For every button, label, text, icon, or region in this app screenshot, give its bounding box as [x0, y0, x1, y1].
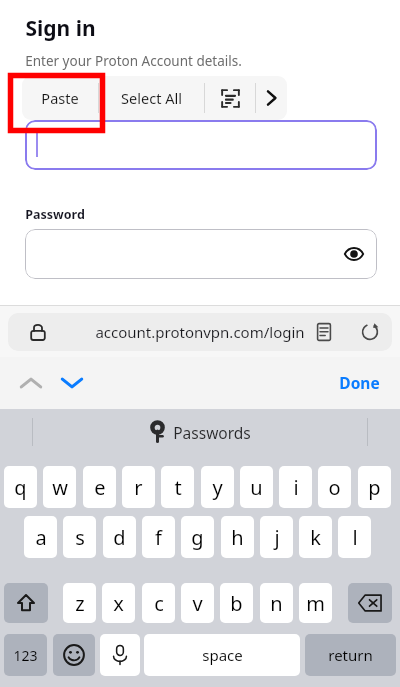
- staticText: j: [274, 524, 280, 551]
- button[interactable]: q: [4, 466, 37, 508]
- button[interactable]: x: [102, 583, 135, 623]
- staticText: space: [202, 645, 243, 665]
- staticText: r: [134, 474, 143, 501]
- button[interactable]: h: [221, 516, 254, 558]
- button[interactable]: Previous field: [14, 371, 48, 395]
- button[interactable]: space: [144, 634, 300, 676]
- staticText: f: [155, 524, 162, 551]
- staticText: v: [192, 590, 203, 617]
- staticText: i: [293, 474, 299, 501]
- other: Secure connection: [28, 322, 48, 342]
- button[interactable]: Scan text: [205, 76, 255, 120]
- button[interactable]: [25, 120, 377, 170]
- button[interactable]: Done: [330, 367, 388, 397]
- staticText: return: [328, 645, 373, 665]
- button[interactable]: 123: [4, 634, 47, 676]
- button[interactable]: Shift: [4, 583, 48, 623]
- button[interactable]: k: [299, 516, 332, 558]
- staticText: s: [75, 524, 85, 551]
- staticText: m: [306, 590, 325, 617]
- staticText: b: [230, 590, 243, 617]
- button[interactable]: f: [142, 516, 175, 558]
- staticText: Select All: [121, 88, 182, 108]
- button[interactable]: g: [181, 516, 214, 558]
- staticText: h: [231, 524, 244, 551]
- button[interactable]: z: [63, 583, 96, 623]
- staticText: Password: [25, 206, 85, 223]
- staticText: Passwords: [173, 422, 251, 443]
- button[interactable]: Dictation: [100, 634, 140, 676]
- button[interactable]: i: [279, 466, 312, 508]
- staticText: n: [270, 590, 283, 617]
- button[interactable]: v: [181, 583, 214, 623]
- staticText: e: [94, 474, 106, 501]
- button[interactable]: Reload: [360, 322, 380, 342]
- button[interactable]: Show password: [340, 240, 368, 268]
- staticText: a: [35, 524, 47, 551]
- button[interactable]: Secure connection: [8, 313, 392, 351]
- button[interactable]: r: [122, 466, 155, 508]
- staticText: w: [52, 474, 68, 501]
- staticText: p: [368, 474, 381, 501]
- button[interactable]: n: [260, 583, 293, 623]
- button[interactable]: m: [299, 583, 332, 623]
- button[interactable]: j: [260, 516, 293, 558]
- button[interactable]: d: [103, 516, 136, 558]
- staticText: y: [212, 474, 223, 501]
- button[interactable]: y: [201, 466, 234, 508]
- button[interactable]: Next field: [55, 371, 89, 395]
- button[interactable]: Paste: [22, 76, 98, 120]
- button[interactable]: Passwords: [0, 409, 400, 455]
- staticText: Sign in: [25, 14, 96, 43]
- button[interactable]: a: [24, 516, 57, 558]
- staticText: x: [113, 590, 124, 617]
- button[interactable]: t: [161, 466, 194, 508]
- button[interactable]: More: [256, 76, 287, 120]
- staticText: k: [310, 524, 321, 551]
- button[interactable]: p: [358, 466, 391, 508]
- staticText: Paste: [41, 88, 79, 108]
- button[interactable]: Emoji: [53, 634, 95, 676]
- button[interactable]: e: [83, 466, 116, 508]
- button[interactable]: c: [142, 583, 175, 623]
- staticText: d: [113, 524, 126, 551]
- staticText: t: [174, 474, 182, 501]
- button[interactable]: l: [338, 516, 371, 558]
- button[interactable]: u: [240, 466, 273, 508]
- button[interactable]: o: [318, 466, 351, 508]
- staticText: Enter your Proton Account details.: [25, 52, 242, 70]
- button[interactable]: return: [305, 634, 396, 676]
- staticText: g: [191, 524, 204, 551]
- staticText: 123: [13, 646, 38, 665]
- staticText: l: [352, 524, 358, 551]
- staticText: u: [250, 474, 263, 501]
- button[interactable]: [25, 229, 377, 279]
- staticText: z: [75, 590, 85, 617]
- button[interactable]: Select All: [99, 76, 204, 120]
- staticText: account.protonvpn.com/login: [95, 322, 305, 342]
- button[interactable]: Reader view: [314, 322, 334, 342]
- staticText: q: [14, 474, 27, 501]
- staticText: o: [328, 474, 341, 501]
- button[interactable]: w: [43, 466, 76, 508]
- staticText: Done: [339, 372, 380, 393]
- button[interactable]: s: [63, 516, 96, 558]
- button[interactable]: Backspace: [348, 583, 392, 623]
- staticText: c: [154, 590, 164, 617]
- button[interactable]: b: [220, 583, 253, 623]
